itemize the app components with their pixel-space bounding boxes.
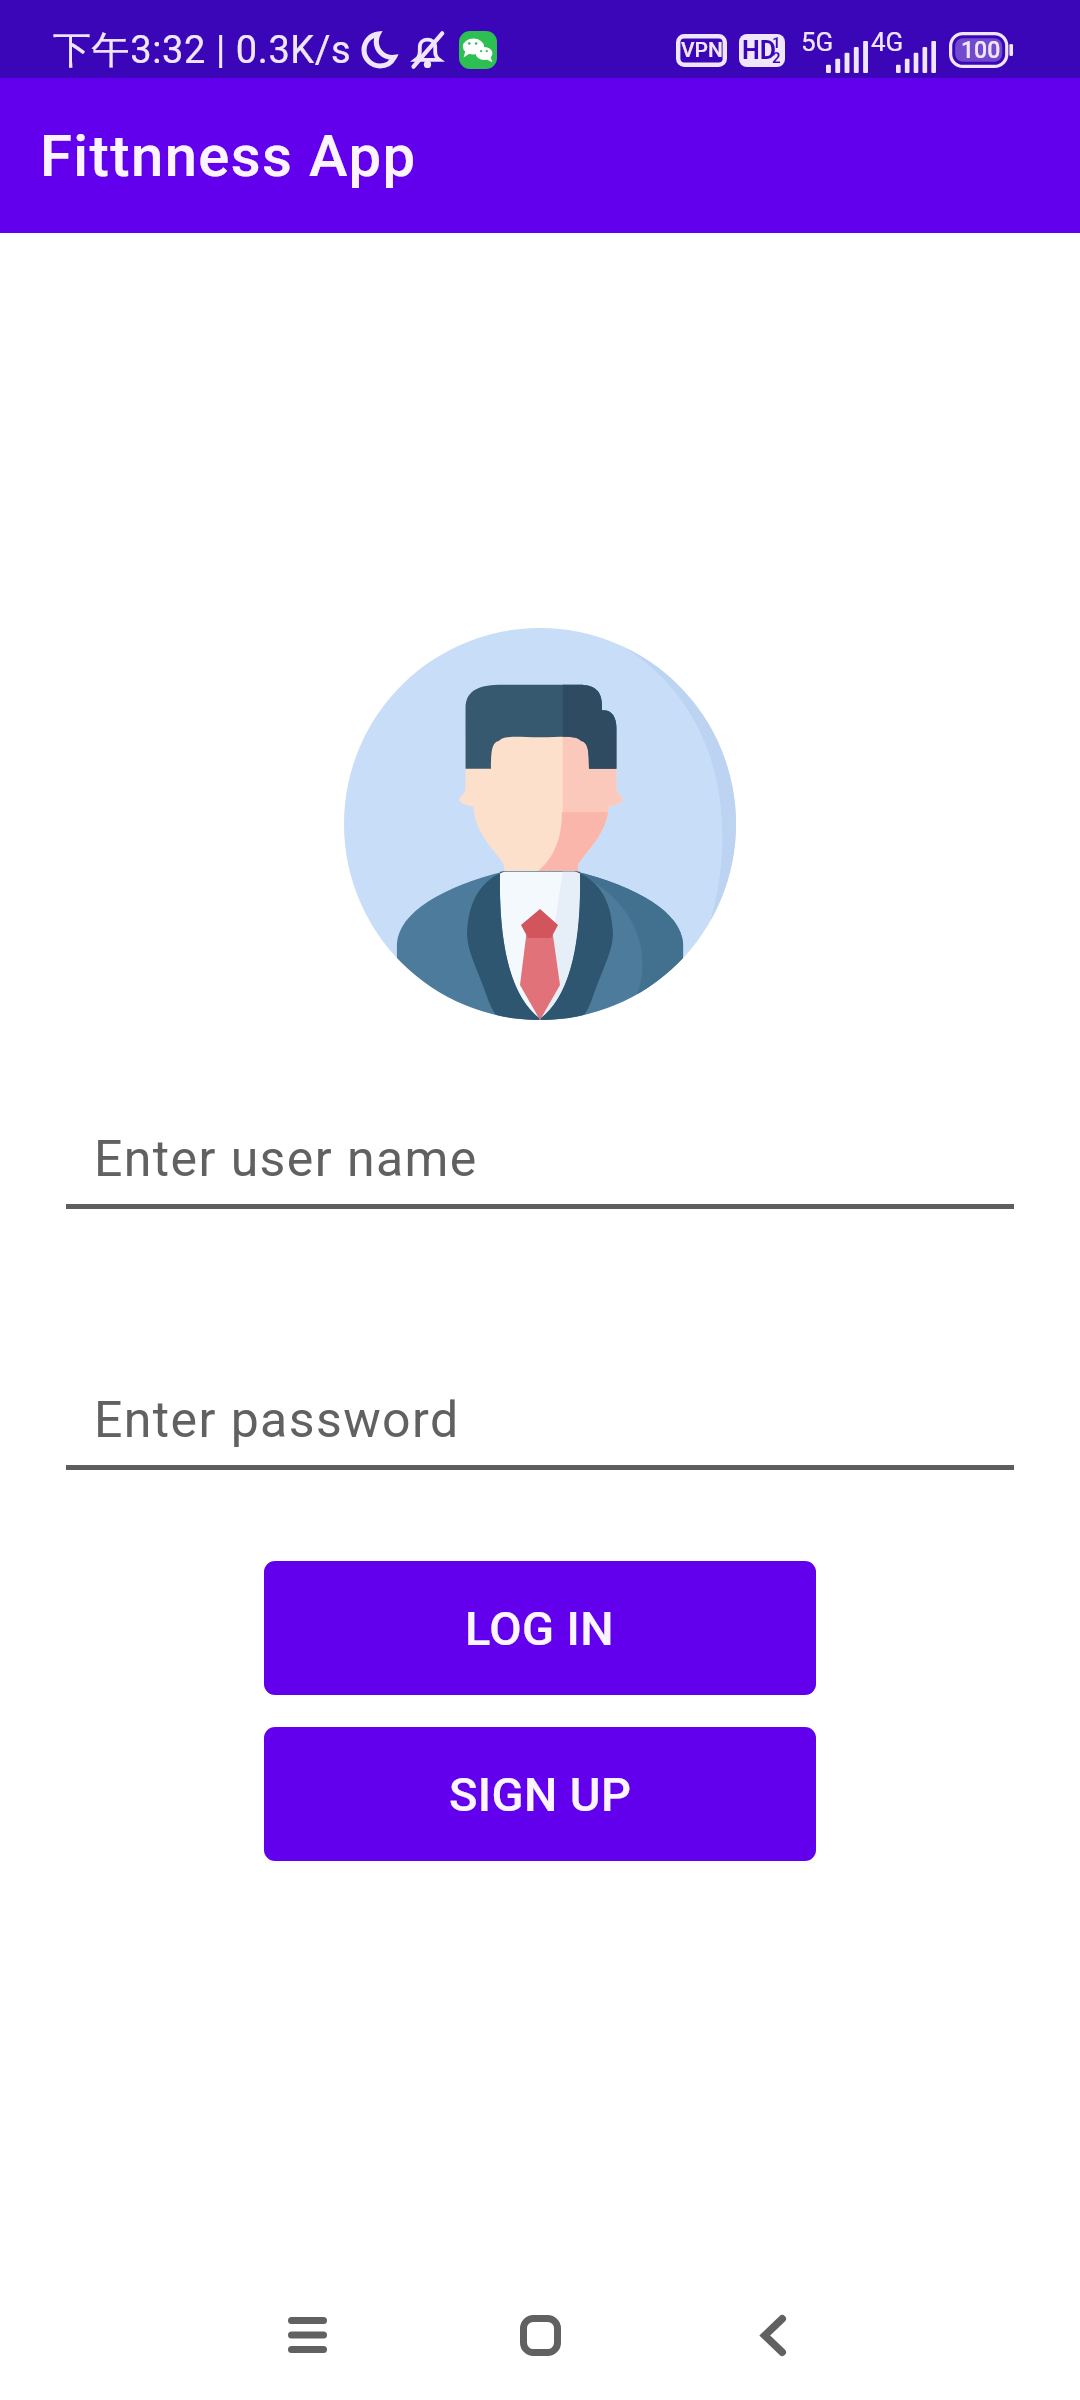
staticText: Fittnness App bbox=[40, 122, 417, 190]
staticText: Enter password bbox=[94, 1391, 460, 1450]
staticText: 2 bbox=[772, 49, 781, 67]
button[interactable]: SIGN UP bbox=[264, 1727, 816, 1861]
staticText: 100 bbox=[961, 37, 1001, 64]
staticText: LOG IN bbox=[465, 1601, 615, 1656]
staticText: HD bbox=[742, 36, 776, 65]
button[interactable]: Home bbox=[478, 2270, 602, 2400]
button[interactable]: Enter password bbox=[66, 1378, 1014, 1470]
staticText: SIGN UP bbox=[449, 1767, 632, 1822]
staticText: VPN bbox=[681, 38, 723, 63]
staticText: 4G bbox=[871, 27, 904, 57]
button[interactable]: LOG IN bbox=[264, 1561, 816, 1695]
staticText: 5G bbox=[801, 27, 834, 57]
button[interactable]: Recent apps bbox=[245, 2270, 369, 2400]
staticText: Enter user name bbox=[94, 1130, 478, 1189]
staticText: 1 bbox=[772, 34, 781, 52]
button[interactable]: Back bbox=[711, 2270, 835, 2400]
button[interactable]: Enter user name bbox=[66, 1117, 1014, 1209]
staticText: 下午3:32 | 0.3K/s bbox=[53, 26, 352, 74]
